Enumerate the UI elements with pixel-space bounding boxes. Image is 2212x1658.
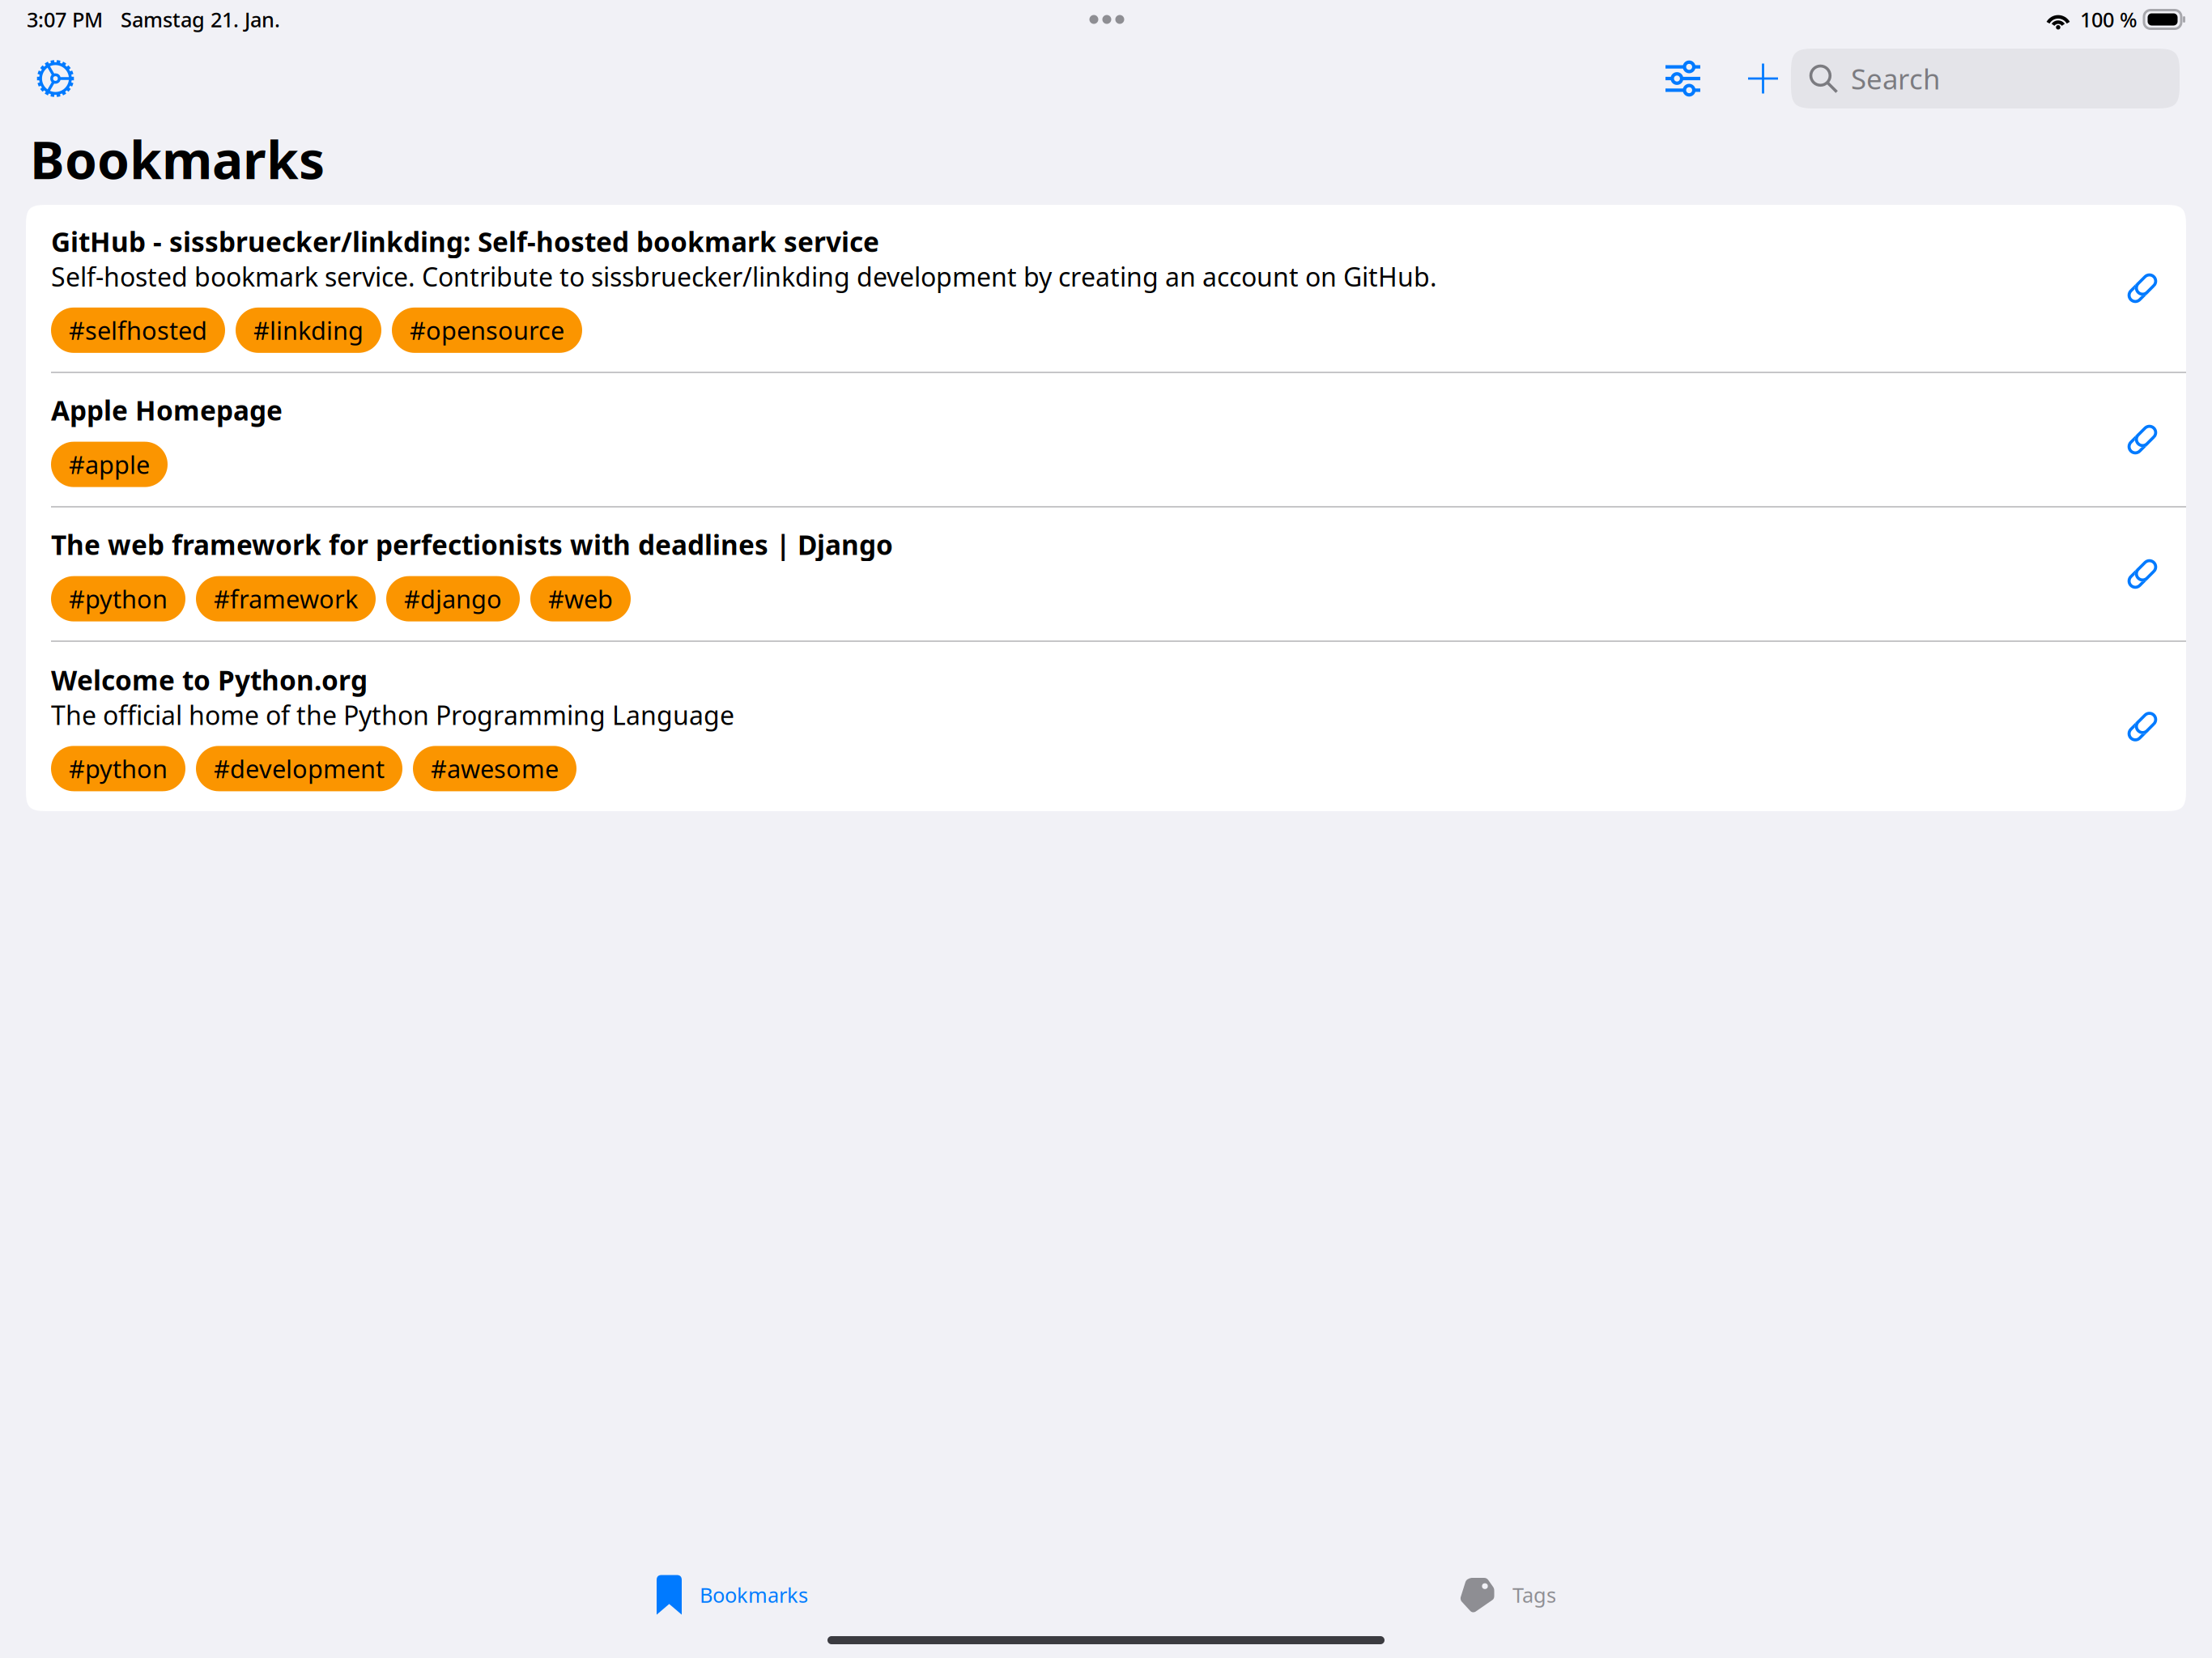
button[interactable]: Settings: [36, 49, 75, 108]
button[interactable]: #web: [530, 576, 631, 621]
staticText: Apple Homepage: [51, 392, 283, 428]
button[interactable]: Tags: [1457, 1572, 1556, 1618]
button[interactable]: Open link: [2116, 548, 2168, 600]
staticText: GitHub - sissbruecker/linkding: Self-hos…: [51, 224, 879, 259]
button[interactable]: #opensource: [392, 308, 582, 353]
staticText: Bookmarks: [700, 1581, 808, 1608]
staticText: #opensource: [410, 314, 564, 347]
staticText: The web framework for perfectionists wit…: [51, 527, 893, 562]
button[interactable]: Welcome to Python.org: [26, 642, 2186, 811]
button[interactable]: Open link: [2116, 262, 2168, 314]
staticText: #python: [69, 752, 168, 785]
staticText: #framework: [214, 582, 358, 615]
button[interactable]: Open link: [2116, 701, 2168, 752]
staticText: 3:07 PM: [27, 6, 103, 33]
button[interactable]: Add bookmark: [1748, 49, 1778, 108]
button[interactable]: Search: [1791, 49, 2180, 108]
staticText: #linkding: [253, 314, 364, 347]
button[interactable]: #development: [196, 746, 402, 791]
staticText: Tags: [1512, 1581, 1556, 1608]
staticText: #awesome: [431, 752, 559, 785]
button[interactable]: Open link: [2116, 414, 2168, 466]
staticText: #python: [69, 582, 168, 615]
button[interactable]: #python: [51, 576, 185, 621]
button[interactable]: The web framework for perfectionists wit…: [26, 508, 2186, 640]
button[interactable]: #linkding: [236, 308, 381, 353]
button[interactable]: GitHub - sissbruecker/linkding: Self-hos…: [26, 205, 2186, 372]
staticText: #development: [214, 752, 385, 785]
button[interactable]: #apple: [51, 442, 168, 487]
staticText: Search: [1851, 60, 1940, 97]
staticText: 100 %: [2080, 6, 2138, 33]
staticText: Bookmarks: [30, 125, 325, 193]
staticText: #selfhosted: [69, 314, 207, 347]
button[interactable]: #awesome: [413, 746, 576, 791]
staticText: Self-hosted bookmark service. Contribute…: [51, 259, 1437, 294]
staticText: The official home of the Python Programm…: [51, 698, 734, 732]
button[interactable]: Filter bookmarks: [1665, 49, 1700, 108]
staticText: #django: [404, 582, 502, 615]
staticText: Samstag 21. Jan.: [121, 6, 280, 33]
button[interactable]: #framework: [196, 576, 376, 621]
staticText: Welcome to Python.org: [51, 662, 368, 698]
button[interactable]: #selfhosted: [51, 308, 225, 353]
button[interactable]: Bookmarks: [657, 1572, 808, 1618]
button[interactable]: #django: [386, 576, 520, 621]
staticText: #apple: [69, 448, 150, 481]
button[interactable]: #python: [51, 746, 185, 791]
staticText: #web: [548, 582, 613, 615]
button[interactable]: Apple Homepage: [26, 373, 2186, 506]
